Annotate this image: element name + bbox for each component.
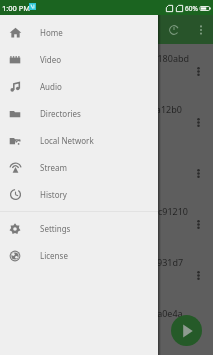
button[interactable]: License (0, 242, 158, 269)
staticText: Directories (40, 108, 81, 119)
button[interactable]: Play (171, 315, 202, 346)
staticText: Settings (40, 223, 71, 234)
staticText: 9f27e4bc0a5d36f81e7c4a93b6d25fa12b0 (8, 103, 182, 115)
button[interactable]: Refresh (160, 15, 188, 44)
button[interactable]: c8a3d7e61f4b29c05e7a3df4d7c9b2180abd (0, 46, 213, 97)
button[interactable]: More (190, 148, 206, 199)
staticText: Home (40, 27, 63, 38)
staticText: a71c53fe8d920b46c1e7d05b38f6c4a0e4a (8, 307, 183, 319)
button[interactable]: More (190, 97, 206, 148)
button[interactable]: 9f27e4bc0a5d36f81e7c4a93b6d25fa12b0 (0, 97, 213, 148)
staticText: 7d1e4c09b35a (8, 154, 70, 166)
staticText: 00:13 (8, 167, 26, 177)
button[interactable]: More (190, 46, 206, 97)
staticText: b63c90af25e7d4182cf7e60b39d4e7c91210 (8, 205, 188, 217)
button[interactable]: Settings (0, 215, 158, 242)
button[interactable]: More (190, 199, 206, 250)
staticText: Stream (40, 162, 67, 173)
staticText: 4ef82d90c1a75b36e08c3f7d9ab4c5931d7 (8, 256, 184, 268)
button[interactable]: Directories (0, 100, 158, 127)
button[interactable]: Home (0, 19, 158, 46)
staticText: 60% (185, 4, 198, 13)
button[interactable]: Audio (0, 73, 158, 100)
staticText: History (40, 189, 67, 200)
button[interactable]: Video (0, 46, 158, 73)
staticText: 1:00 PM (2, 3, 31, 13)
button[interactable]: 7d1e4c09b35a (0, 148, 213, 199)
staticText: 00:13 (8, 116, 26, 126)
staticText: Local Network (40, 135, 94, 146)
button[interactable]: Stream (0, 154, 158, 181)
button[interactable]: b63c90af25e7d4182cf7e60b39d4e7c91210 (0, 199, 213, 250)
button[interactable]: Local Network (0, 127, 158, 154)
button[interactable]: a71c53fe8d920b46c1e7d05b38f6c4a0e4a (0, 301, 213, 352)
button[interactable]: History (0, 181, 158, 208)
staticText: Audio (40, 81, 62, 92)
button[interactable]: More options (190, 15, 212, 44)
button[interactable]: More (190, 250, 206, 301)
button[interactable]: 4ef82d90c1a75b36e08c3f7d9ab4c5931d7 (0, 250, 213, 301)
staticText: 00:13 (8, 218, 26, 228)
button[interactable]: More (190, 301, 206, 352)
staticText: License (40, 250, 68, 261)
staticText: c8a3d7e61f4b29c05e7a3df4d7c9b2180abd (8, 52, 190, 64)
staticText: Video (40, 54, 62, 65)
